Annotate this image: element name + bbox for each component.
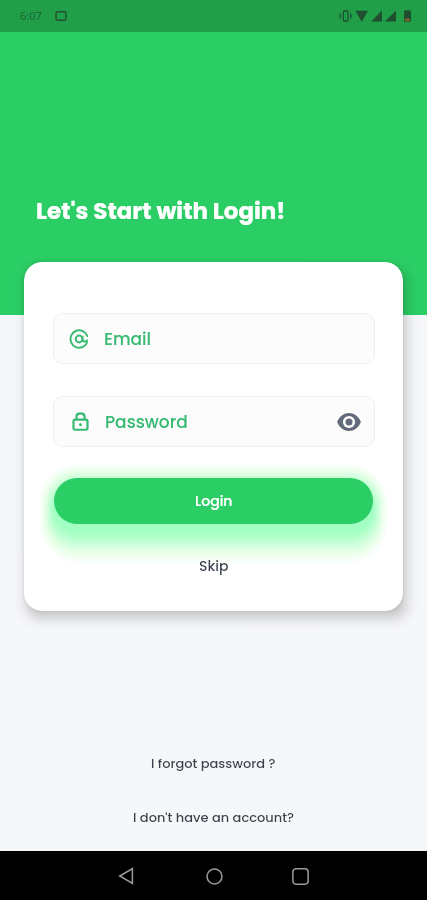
button[interactable]: Home bbox=[195, 857, 233, 895]
staticText: Password bbox=[105, 410, 188, 434]
staticText: 6:07 bbox=[20, 8, 42, 23]
button[interactable]: Password bbox=[53, 396, 375, 447]
button[interactable]: Skip bbox=[199, 556, 229, 576]
button[interactable]: I don't have an account? bbox=[133, 808, 294, 826]
button[interactable]: Recents bbox=[281, 857, 319, 895]
button[interactable]: Back bbox=[108, 857, 146, 895]
staticText: Skip bbox=[199, 556, 229, 576]
button[interactable]: Show password bbox=[335, 408, 363, 436]
staticText: Login bbox=[195, 491, 233, 511]
staticText: Email bbox=[104, 327, 152, 351]
button[interactable]: Login bbox=[54, 478, 373, 524]
staticText: Let's Start with Login! bbox=[36, 195, 286, 227]
staticText: I don't have an account? bbox=[133, 808, 294, 826]
button[interactable]: Email bbox=[53, 313, 375, 364]
staticText: I forgot password ? bbox=[151, 754, 276, 772]
button[interactable]: I forgot password ? bbox=[151, 754, 276, 772]
